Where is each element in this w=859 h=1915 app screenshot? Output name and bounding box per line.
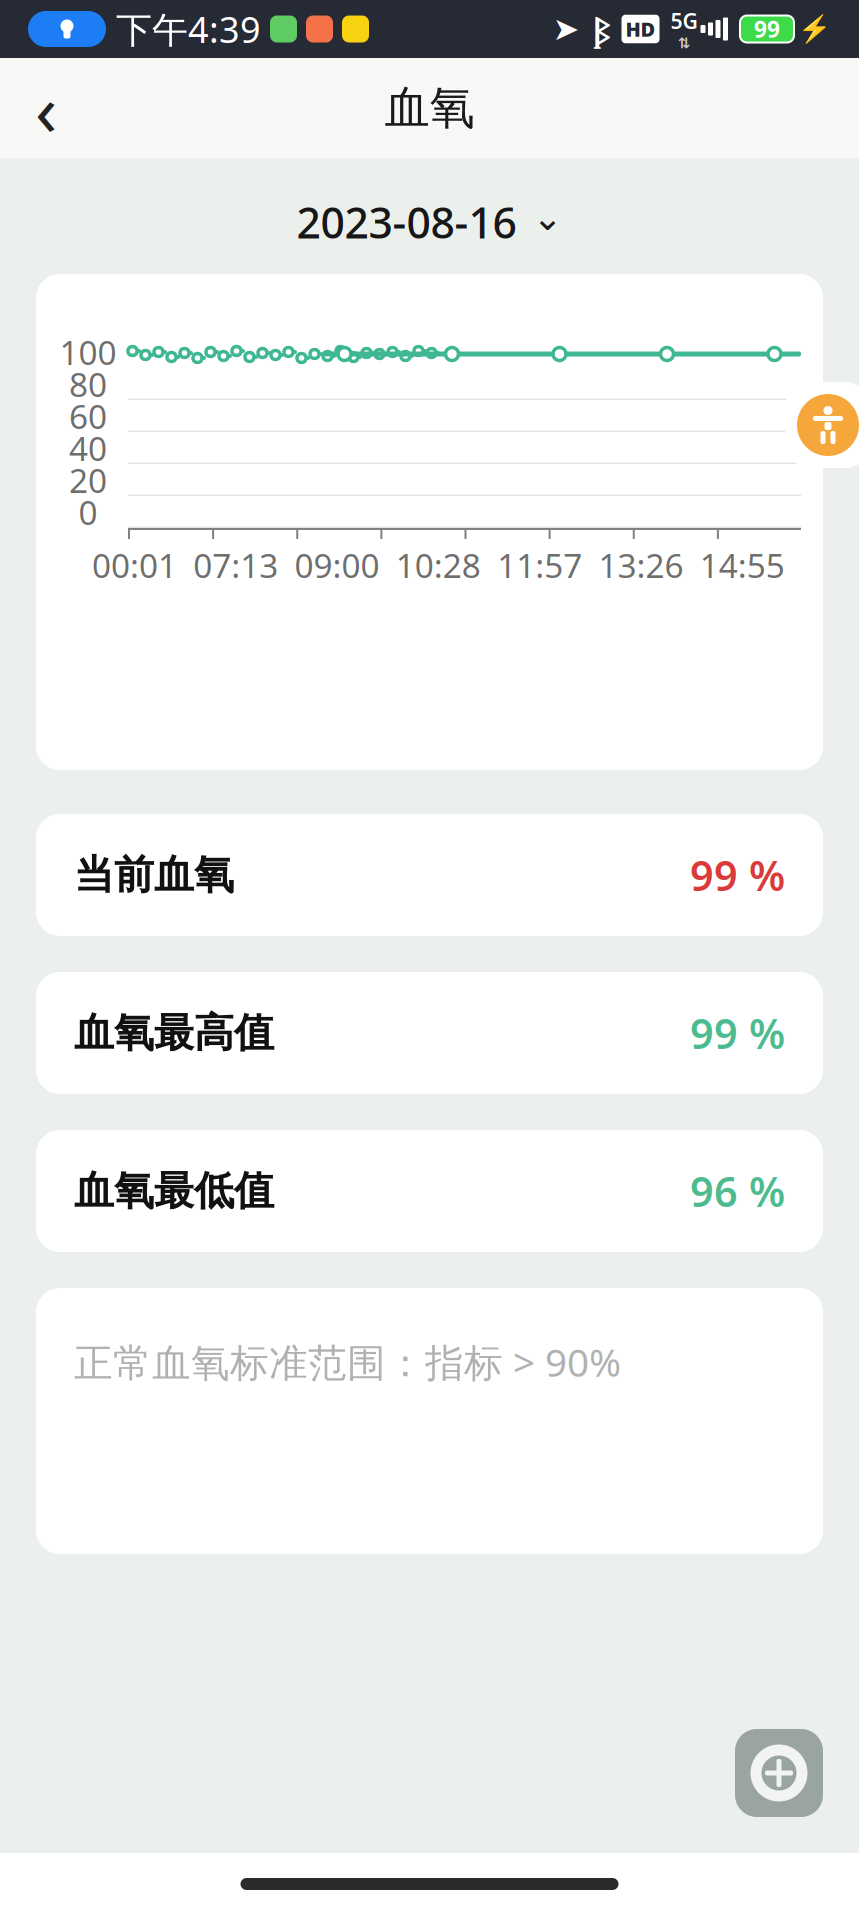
staticText: 100 bbox=[59, 330, 116, 374]
staticText: 99 % bbox=[690, 1006, 785, 1060]
staticText: 09:00 bbox=[295, 543, 380, 587]
staticText: ‹ bbox=[35, 60, 57, 156]
staticText: ᛒ bbox=[592, 7, 609, 51]
button[interactable]: 血氧最高值 bbox=[36, 972, 823, 1094]
button[interactable]: 返回 bbox=[0, 62, 92, 154]
staticText: ➤ bbox=[552, 11, 579, 47]
staticText: 血氧最高值 bbox=[74, 1008, 274, 1057]
staticText: 10:28 bbox=[396, 543, 481, 587]
staticText: 0 bbox=[78, 490, 97, 534]
button[interactable]: 当前血氧 bbox=[36, 814, 823, 936]
staticText: 00:01 bbox=[92, 543, 177, 587]
staticText: 20 bbox=[69, 458, 107, 502]
staticText: HD bbox=[625, 16, 655, 42]
staticText: ⇅ bbox=[678, 35, 690, 51]
staticText: 11:57 bbox=[497, 543, 582, 587]
staticText: 60 bbox=[69, 394, 107, 438]
staticText: 13:26 bbox=[598, 543, 683, 587]
staticText: 14:55 bbox=[700, 543, 785, 587]
staticText: 当前血氧 bbox=[74, 850, 234, 899]
staticText: 96 % bbox=[690, 1164, 785, 1218]
staticText: 99 % bbox=[690, 848, 785, 902]
button[interactable]: 设置 bbox=[735, 1729, 823, 1817]
staticText: 40 bbox=[69, 426, 107, 470]
staticText: 2023-08-16 bbox=[296, 194, 516, 250]
button[interactable]: 无障碍 bbox=[785, 382, 859, 468]
staticText: 07:13 bbox=[193, 543, 278, 587]
staticText: 血氧最低值 bbox=[74, 1166, 274, 1215]
button[interactable]: 2023-08-16 bbox=[282, 190, 576, 254]
staticText: 5G bbox=[670, 6, 697, 35]
staticText: 正常血氧标准范围：指标 > 90% bbox=[74, 1336, 621, 1387]
staticText: 下午4:39 bbox=[116, 5, 261, 53]
staticText: ⌄ bbox=[532, 197, 562, 238]
staticText: 血氧 bbox=[384, 80, 474, 136]
button[interactable]: 血氧最低值 bbox=[36, 1130, 823, 1252]
staticText: 99 bbox=[754, 14, 780, 44]
staticText: 80 bbox=[69, 362, 107, 406]
staticText: ⚡ bbox=[798, 14, 831, 44]
